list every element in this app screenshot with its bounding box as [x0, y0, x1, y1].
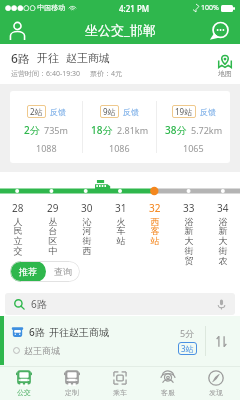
staticText: 丛台区中 — [48, 216, 58, 257]
staticText: ●●●○○ 中国移动 — [5, 3, 66, 13]
staticText: 1065 — [183, 142, 204, 154]
button[interactable]: 2站 — [10, 91, 82, 163]
staticText: 火车站 — [116, 216, 126, 247]
staticText: 浴新大街贸 — [184, 216, 194, 267]
button[interactable]: Map — [218, 55, 232, 78]
staticText: 定制 — [65, 388, 79, 397]
staticText: 1086 — [109, 142, 130, 154]
button[interactable]: Swap direction — [206, 326, 236, 356]
staticText: 6路 — [11, 50, 30, 66]
button[interactable]: 查询 — [46, 261, 80, 282]
staticText: 4:21 PM — [119, 3, 150, 14]
button[interactable]: 28 — [0, 201, 35, 257]
staticText: 发现 — [209, 388, 223, 397]
staticText: 公交 — [17, 388, 31, 397]
button[interactable]: 公交 — [0, 367, 48, 400]
staticText: 赵王商城 — [24, 345, 60, 356]
staticText: 推荐 — [19, 266, 37, 277]
staticText: 29 — [47, 201, 59, 215]
staticText: 乘车 — [113, 388, 127, 397]
staticText: 人民立交 — [13, 216, 23, 257]
staticText: 地图 — [218, 69, 232, 78]
staticText: 反馈 — [200, 107, 216, 117]
staticText: 38分 — [165, 123, 187, 137]
staticText: 查询 — [54, 266, 72, 277]
button[interactable]: 6路 — [0, 316, 240, 365]
staticText: 反馈 — [123, 107, 139, 117]
staticText: 6路 — [29, 325, 45, 339]
staticText: 开往赵王商城 — [49, 326, 109, 339]
staticText: 19站 — [175, 106, 193, 117]
staticText: 反馈 — [50, 107, 66, 117]
staticText: 2.81km — [117, 124, 149, 136]
staticText: 5.72km — [191, 124, 223, 136]
staticText: 3站 — [181, 343, 194, 354]
button[interactable]: 33 — [172, 201, 206, 267]
button[interactable]: Profile — [4, 17, 30, 43]
button[interactable]: 34 — [206, 201, 240, 267]
button[interactable]: 发现 — [192, 367, 240, 400]
staticText: 西客站 — [150, 216, 160, 247]
staticText: 运营时间：6:40-19:30 — [11, 69, 81, 79]
button[interactable]: Messages — [207, 18, 231, 42]
staticText: 2分 — [24, 123, 40, 137]
staticText: 浴新大街农 — [218, 216, 228, 267]
staticText: 32 — [149, 201, 161, 215]
staticText: 30 — [81, 201, 93, 215]
button[interactable]: 6路 — [5, 293, 235, 315]
button[interactable]: 32 — [138, 201, 172, 247]
staticText: 31 — [115, 201, 127, 215]
button[interactable]: 9站 — [83, 91, 156, 163]
staticText: 28 — [12, 201, 24, 215]
button[interactable]: Voice search — [212, 295, 230, 313]
button[interactable]: 客服 — [144, 367, 192, 400]
staticText: 2站 — [30, 106, 43, 117]
staticText: 34 — [217, 201, 229, 215]
staticText: 沁河街西 — [82, 216, 92, 257]
staticText: 9站 — [103, 106, 116, 117]
button[interactable]: 31 — [104, 201, 138, 247]
staticText: 5分 — [180, 327, 195, 339]
staticText: 赵王商城 — [66, 51, 110, 65]
staticText: 735m — [44, 124, 68, 136]
button[interactable]: 推荐 — [10, 261, 46, 282]
staticText: 18分 — [91, 123, 113, 137]
staticText: 6路 — [31, 297, 47, 311]
staticText: 坐公交_邯郸 — [85, 21, 156, 39]
staticText: 1088 — [36, 142, 57, 154]
button[interactable]: 30 — [70, 201, 104, 257]
staticText: 33 — [183, 201, 195, 215]
staticText: 100% — [201, 3, 219, 13]
staticText: 票价：4元 — [90, 69, 123, 79]
staticText: 开往 — [37, 51, 59, 65]
button[interactable]: 29 — [35, 201, 70, 257]
button[interactable]: 定制 — [48, 367, 96, 400]
button[interactable]: 19站 — [157, 91, 230, 163]
button[interactable]: 乘车 — [96, 367, 144, 400]
staticText: 客服 — [161, 388, 175, 397]
